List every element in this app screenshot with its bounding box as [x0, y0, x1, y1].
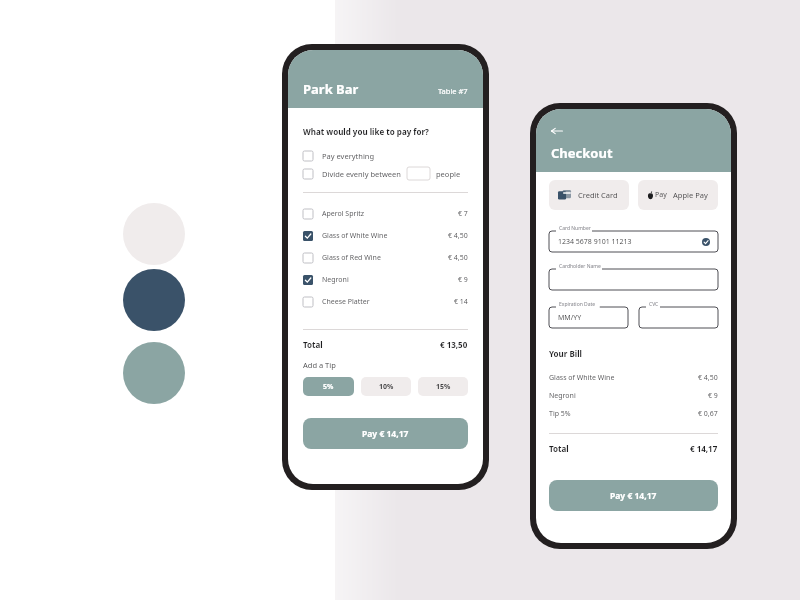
staticText: MM/YY: [558, 313, 582, 323]
staticText: € 13,50: [440, 339, 468, 350]
staticText: € 14: [454, 297, 468, 307]
button[interactable]: Cheese Platter: [303, 291, 468, 313]
staticText: Expiration Date: [559, 301, 596, 308]
staticText: € 0,67: [698, 409, 718, 419]
button[interactable]: Divide evenly between: [303, 167, 468, 180]
button[interactable]: Pay everything: [303, 151, 468, 161]
staticText: Glass of White Wine: [549, 373, 615, 383]
button[interactable]: Negroni: [303, 269, 468, 291]
staticText: Credit Card: [578, 190, 618, 200]
staticText: Negroni: [549, 391, 576, 401]
staticText: Negroni: [322, 275, 349, 285]
button[interactable]: Pay € 14,17: [549, 480, 718, 511]
button[interactable]: 10%: [361, 377, 411, 396]
staticText: € 4,50: [448, 253, 468, 263]
button[interactable]: Credit Card: [549, 180, 629, 210]
staticText: Checkout: [551, 144, 613, 162]
staticText: Total: [303, 339, 323, 350]
staticText: € 7: [458, 209, 468, 219]
staticText: Pay everything: [322, 151, 375, 161]
staticText: Pay: [655, 190, 667, 200]
staticText: Cardholder Name: [559, 263, 601, 270]
button[interactable]: Aperol Spritz: [303, 203, 468, 225]
button[interactable]: Glass of Red Wine: [303, 247, 468, 269]
button[interactable]: 5%: [303, 377, 354, 396]
staticText: € 4,50: [698, 373, 718, 383]
staticText: Apple Pay: [673, 190, 708, 200]
staticText: Total: [549, 443, 569, 454]
staticText: € 9: [458, 275, 468, 285]
staticText: Aperol Spritz: [322, 209, 364, 219]
staticText: 15%: [436, 382, 451, 392]
staticText: 10%: [379, 382, 394, 392]
staticText: people: [436, 169, 461, 179]
staticText: € 14,17: [690, 443, 718, 454]
staticText: Divide evenly between: [322, 169, 401, 179]
button[interactable]: Pay: [638, 180, 718, 210]
button[interactable]: Pay € 14,17: [303, 418, 468, 449]
staticText: CVC: [649, 301, 659, 308]
staticText: Pay € 14,17: [610, 490, 657, 502]
staticText: Park Bar: [303, 80, 359, 98]
staticText: Tip 5%: [549, 409, 571, 419]
staticText: Glass of White Wine: [322, 231, 388, 241]
staticText: 1234 5678 9101 11213: [558, 237, 632, 247]
staticText: Pay € 14,17: [362, 428, 409, 440]
staticText: Card Number: [559, 225, 591, 232]
staticText: € 4,50: [448, 231, 468, 241]
staticText: 5%: [323, 382, 334, 392]
staticText: Cheese Platter: [322, 297, 370, 307]
button[interactable]: 15%: [418, 377, 468, 396]
staticText: € 9: [708, 391, 718, 401]
staticText: Add a Tip: [303, 360, 336, 370]
staticText: What would you like to pay for?: [303, 126, 429, 137]
button[interactable]: Back: [551, 125, 563, 137]
staticText: Table #7: [438, 86, 468, 96]
button[interactable]: Glass of White Wine: [303, 225, 468, 247]
staticText: Glass of Red Wine: [322, 253, 381, 263]
staticText: Your Bill: [549, 348, 582, 359]
